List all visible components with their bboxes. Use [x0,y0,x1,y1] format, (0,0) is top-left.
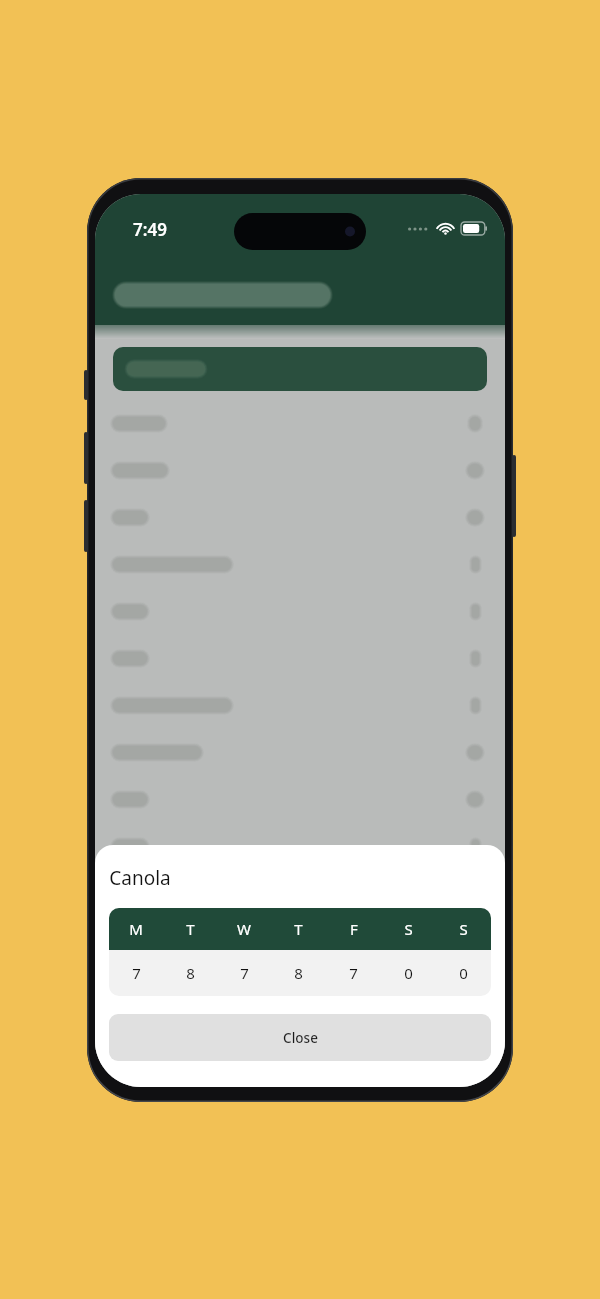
button[interactable]: M [109,908,491,996]
staticText: 0 [404,963,413,983]
staticText: Canola [109,865,171,891]
staticText: 7 [240,963,249,983]
staticText: T [294,919,303,939]
staticText: 8 [186,963,195,983]
staticText: F [350,919,358,939]
staticText: T [186,919,195,939]
staticText: 7:49 [133,218,167,241]
staticText: S [404,919,413,939]
staticText: M [129,919,143,939]
staticText: S [459,919,468,939]
button[interactable]: Close [109,1014,491,1061]
staticText: 0 [459,963,468,983]
staticText: 7 [132,963,141,983]
staticText: Close [283,1029,318,1047]
staticText: 7 [349,963,358,983]
staticText: W [237,919,251,939]
staticText: 8 [294,963,303,983]
